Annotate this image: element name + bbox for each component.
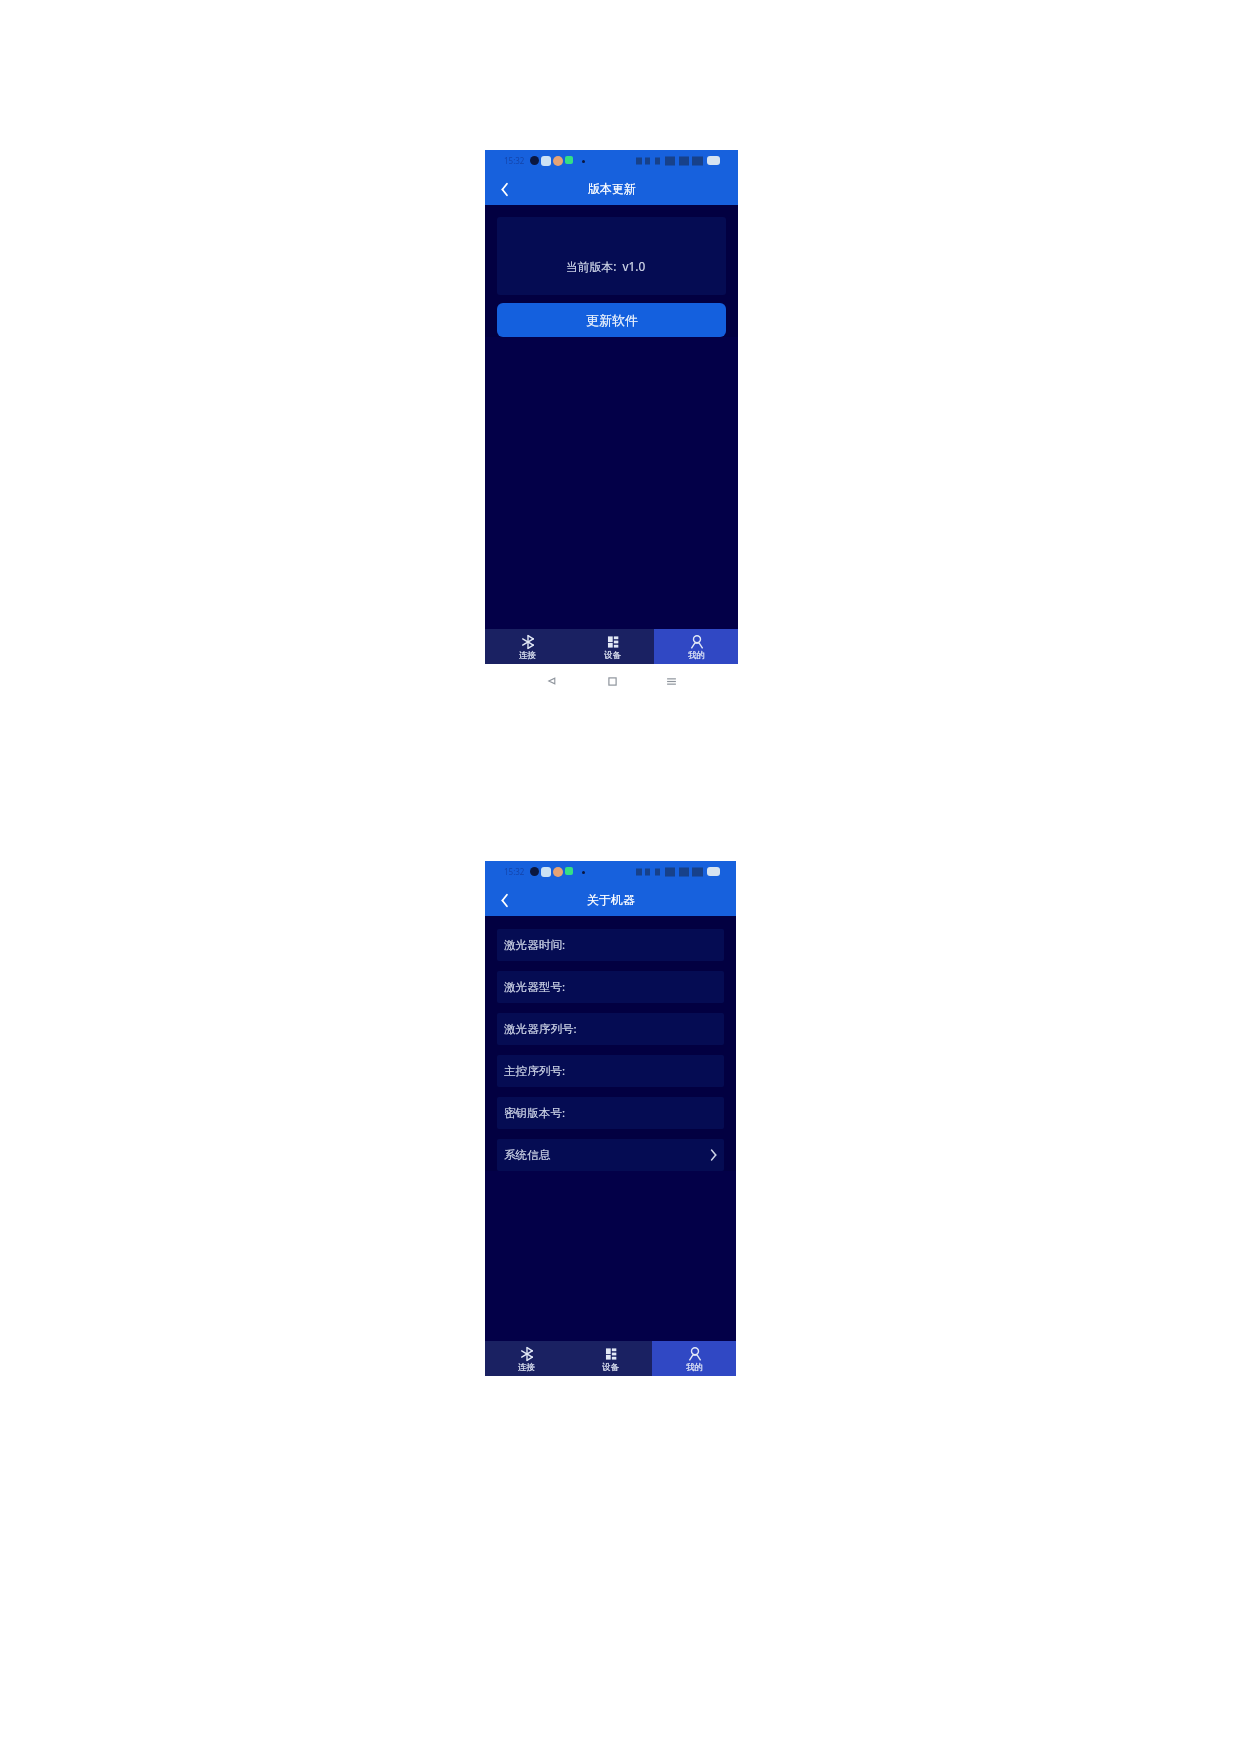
button[interactable]: 密钥版本号:	[497, 1097, 724, 1129]
staticText: 主控序列号:	[504, 1063, 566, 1079]
button[interactable]: 设备	[568, 1341, 652, 1376]
button[interactable]: 更新软件	[497, 303, 726, 337]
button[interactable]: Back	[542, 671, 562, 691]
button[interactable]: 激光器型号:	[497, 971, 724, 1003]
button[interactable]: 主控序列号:	[497, 1055, 724, 1087]
staticText: 连接	[518, 1362, 535, 1373]
staticText: 15:32	[504, 155, 525, 166]
button[interactable]: Back	[493, 889, 515, 911]
staticText: 连接	[519, 650, 536, 661]
button[interactable]: 激光器时间:	[497, 929, 724, 961]
button[interactable]: Home	[602, 671, 622, 691]
staticText: 版本更新	[588, 181, 636, 196]
staticText: 15:32	[504, 866, 525, 877]
staticText: 激光器序列号:	[504, 1021, 577, 1037]
button[interactable]: 连接	[485, 1341, 568, 1376]
staticText: 设备	[602, 1362, 619, 1373]
button[interactable]: Back	[493, 178, 515, 200]
staticText: 我的	[686, 1362, 703, 1373]
button[interactable]: 系统信息	[497, 1139, 724, 1171]
button[interactable]: 我的	[652, 1341, 736, 1376]
staticText: 当前版本: v1.0	[566, 258, 646, 274]
staticText: 激光器型号:	[504, 979, 566, 995]
staticText: 关于机器	[587, 892, 635, 907]
staticText: 激光器时间:	[504, 937, 566, 953]
button[interactable]: 连接	[485, 629, 570, 664]
staticText: 我的	[688, 650, 705, 661]
button[interactable]: 我的	[654, 629, 738, 664]
staticText: 更新软件	[586, 312, 638, 328]
staticText: 密钥版本号:	[504, 1105, 566, 1121]
button[interactable]: 激光器序列号:	[497, 1013, 724, 1045]
button[interactable]: Recent apps	[661, 671, 681, 691]
button[interactable]: 设备	[570, 629, 654, 664]
staticText: 设备	[604, 650, 621, 661]
staticText: 系统信息	[504, 1148, 551, 1163]
